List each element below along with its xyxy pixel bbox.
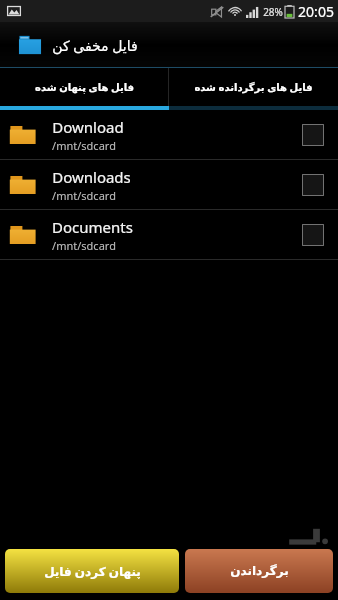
staticText: Download: [52, 117, 124, 137]
button[interactable]: فایل های برگردانده شده: [169, 68, 338, 106]
button[interactable]: Select Downloads: [302, 174, 324, 196]
staticText: Documents: [52, 217, 133, 237]
staticText: فایل های برگردانده شده: [194, 80, 313, 94]
staticText: 28%: [263, 5, 283, 19]
staticText: پنهان کردن فایل: [44, 563, 141, 579]
staticText: 20:05: [298, 2, 334, 21]
button[interactable]: برگرداندن: [185, 549, 333, 593]
button[interactable]: Download: [0, 110, 338, 159]
staticText: /mnt/sdcard: [52, 238, 116, 253]
staticText: برگرداندن: [230, 564, 289, 578]
staticText: Downloads: [52, 167, 131, 187]
button[interactable]: Select Download: [302, 124, 324, 146]
staticText: فایل مخفی کن: [52, 36, 138, 55]
button[interactable]: فایل های پنهان شده: [0, 68, 168, 106]
button[interactable]: پنهان کردن فایل: [5, 549, 179, 593]
staticText: فایل های پنهان شده: [35, 80, 134, 94]
button[interactable]: Downloads: [0, 160, 338, 209]
button[interactable]: Documents: [0, 210, 338, 259]
staticText: /mnt/sdcard: [52, 138, 116, 153]
button[interactable]: Select Documents: [302, 224, 324, 246]
staticText: /mnt/sdcard: [52, 188, 116, 203]
